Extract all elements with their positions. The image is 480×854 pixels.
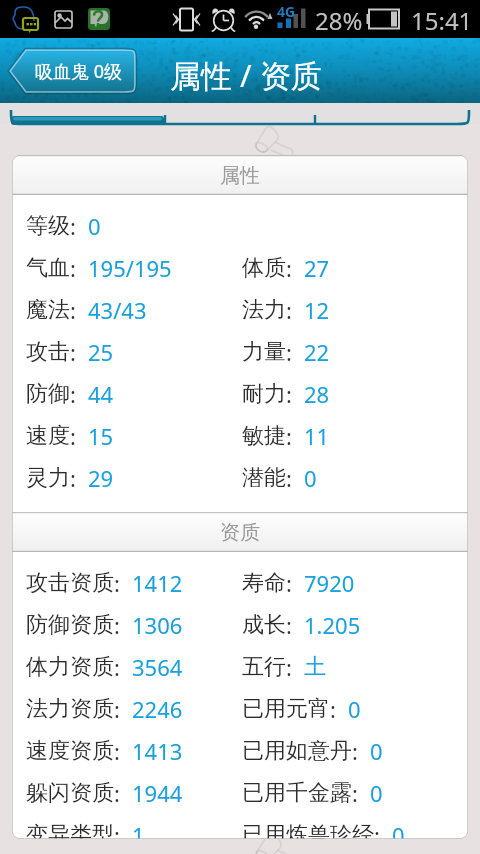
staticText: : [352,778,358,808]
staticText: : [286,463,292,493]
staticText: : [286,610,292,640]
button[interactable]: 防御 [12,373,468,415]
staticText: 等级 [26,212,70,240]
staticText: : [70,337,76,367]
staticText: : [374,820,380,839]
button[interactable]: 返回 吸血鬼 0级 [8,48,137,94]
staticText: 气血 [26,254,70,282]
button[interactable]: 防御资质 [12,604,468,646]
staticText: 已用千金露 [242,779,352,807]
staticText: 速度资质 [26,737,114,765]
staticText: : [70,379,76,409]
staticText: 灵力 [26,464,70,492]
button[interactable]: 躲闪资质 [12,772,468,814]
button[interactable]: 气血 [12,247,468,289]
staticText: : [330,694,336,724]
staticText: 体力资质 [26,653,114,681]
staticText: 敏捷 [242,422,286,450]
staticText: 0 [370,778,383,808]
button[interactable]: 速度 [12,415,468,457]
staticText: 1413 [132,736,183,766]
staticText: 攻击 [26,338,70,366]
staticText: : [286,421,292,451]
staticText: : [352,736,358,766]
staticText: 力量 [242,338,286,366]
staticText: 成长 [242,611,286,639]
staticText: : [70,211,76,241]
button[interactable]: 魔法 [12,289,468,331]
button[interactable]: 等级 [12,205,468,247]
staticText: 法力 [242,296,286,324]
staticText: 防御资质 [26,611,114,639]
staticText: 29 [88,463,114,493]
staticText: 已用元宵 [242,695,330,723]
staticText: 五行 [242,653,286,681]
staticText: 潜能 [242,464,286,492]
staticText: 2246 [132,694,183,724]
button[interactable]: 体力资质 [12,646,468,688]
staticText: : [70,463,76,493]
staticText: 0 [370,736,383,766]
staticText: : [114,694,120,724]
staticText: : [70,253,76,283]
button[interactable]: 速度资质 [12,730,468,772]
staticText: 1306 [132,610,183,640]
staticText: 0 [392,820,405,839]
staticText: 躲闪资质 [26,779,114,807]
staticText: : [114,778,120,808]
button[interactable]: 法力资质 [12,688,468,730]
staticText: 4G [277,2,296,21]
staticText: 资质 [220,520,260,545]
staticText: : [114,736,120,766]
staticText: 7920 [304,568,355,598]
staticText: 15:41 [411,4,473,37]
staticText: 43/43 [88,295,147,325]
staticText: 11 [304,421,330,451]
staticText: 0 [348,694,361,724]
staticText: 法力资质 [26,695,114,723]
staticText: 已用炼兽珍经 [242,821,374,839]
staticText: : [114,820,120,839]
button[interactable]: 攻击资质 [12,562,468,604]
staticText: : [286,337,292,367]
staticText: 3564 [132,652,183,682]
staticText: 1944 [132,778,183,808]
staticText: 耐力 [242,380,286,408]
button[interactable]: 灵力 [12,457,468,499]
staticText: 已用如意丹 [242,737,352,765]
staticText: 195/195 [88,253,172,283]
staticText: 12 [304,295,330,325]
staticText: 0 [304,463,317,493]
staticText: 28 [304,379,330,409]
staticText: : [286,568,292,598]
staticText: 体质 [242,254,286,282]
staticText: : [70,295,76,325]
button[interactable]: 变异类型 [12,814,468,839]
staticText: 44 [88,379,114,409]
staticText: 1 [132,820,145,839]
staticText: : [114,652,120,682]
staticText: 寿命 [242,569,286,597]
staticText: 1412 [132,568,183,598]
button[interactable]: 攻击 [12,331,468,373]
staticText: : [114,610,120,640]
staticText: : [286,379,292,409]
staticText: : [114,568,120,598]
staticText: 28% [315,4,363,37]
staticText: 吸血鬼 0级 [35,59,122,84]
staticText: 25 [88,337,114,367]
staticText: : [286,253,292,283]
staticText: 0 [88,211,101,241]
staticText: 属性 [220,163,260,188]
staticText: 魔法 [26,296,70,324]
staticText: 属性 / 资质 [170,54,322,96]
staticText: 1.205 [304,610,361,640]
staticText: 15 [88,421,114,451]
staticText: 27 [304,253,330,283]
staticText: 22 [304,337,330,367]
staticText: 防御 [26,380,70,408]
staticText: 土 [304,653,326,681]
staticText: 攻击资质 [26,569,114,597]
staticText: 速度 [26,422,70,450]
staticText: 变异类型 [26,821,114,839]
